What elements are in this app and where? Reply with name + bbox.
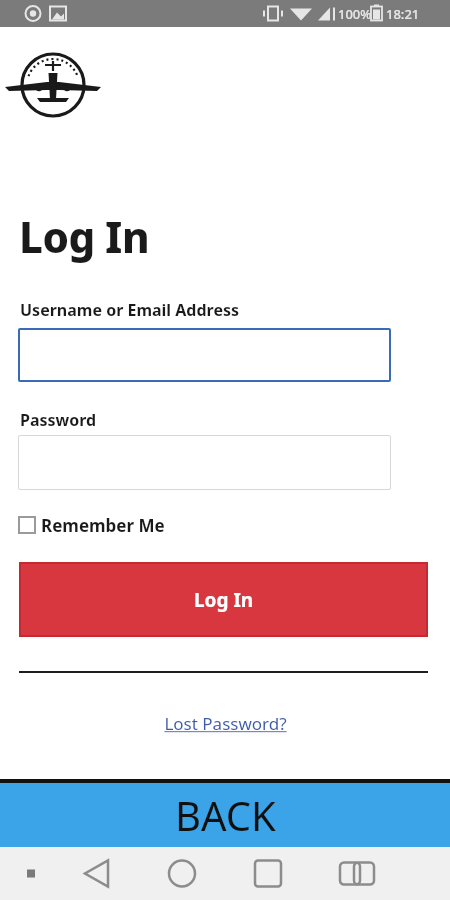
button[interactable]: BACK — [0, 783, 450, 847]
button[interactable]: Lost Password? — [164, 712, 287, 735]
button[interactable]: Remember Me — [18, 511, 165, 539]
staticText: Username or Email Address — [20, 299, 240, 321]
staticText: 100% — [338, 5, 372, 23]
staticText: Remember Me — [41, 514, 165, 537]
staticText: Log In — [19, 208, 150, 265]
staticText: Log In — [194, 587, 254, 613]
staticText: BACK — [175, 788, 276, 842]
staticText: Password — [20, 409, 97, 431]
button[interactable]: Password field — [18, 435, 391, 490]
button[interactable]: Username or Email Address field — [18, 328, 391, 382]
staticText: 18:21 — [386, 5, 420, 23]
button[interactable]: Log In — [19, 562, 428, 637]
